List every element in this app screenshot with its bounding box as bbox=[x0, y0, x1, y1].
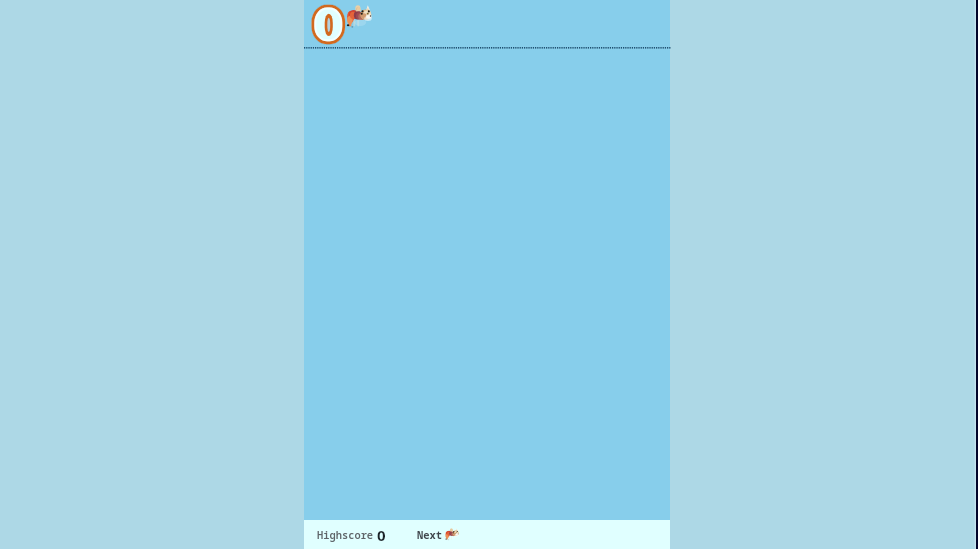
staticText: Highscore bbox=[317, 528, 374, 542]
other: Score 0 bbox=[311, 1, 351, 49]
staticText: 0 bbox=[377, 525, 386, 545]
button[interactable]: Next bbox=[417, 520, 460, 549]
staticText: Next bbox=[417, 528, 442, 542]
button[interactable]: Playfield, tap to drop bbox=[304, 0, 670, 520]
button[interactable]: Highscore bbox=[317, 520, 386, 549]
other: Next animal bbox=[445, 527, 460, 542]
other: Current animal bbox=[346, 3, 374, 31]
